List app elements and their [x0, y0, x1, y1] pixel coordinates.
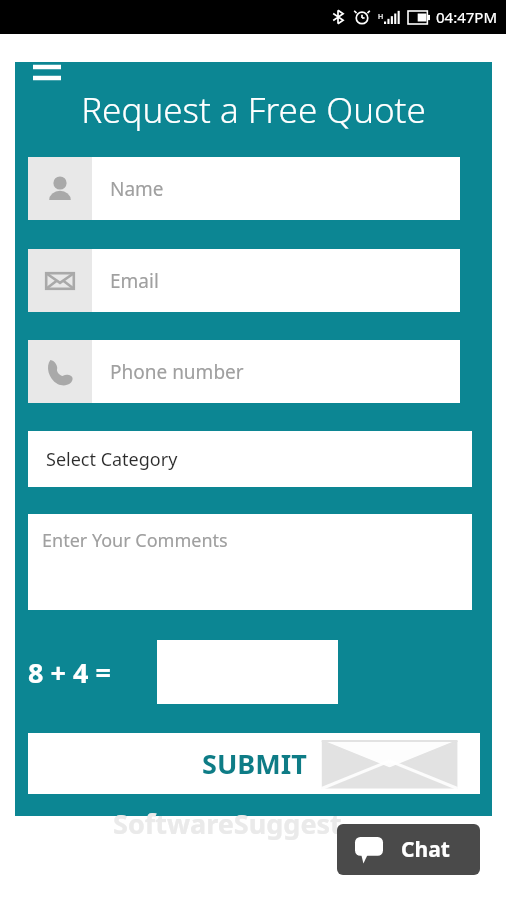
staticText: H: [378, 12, 384, 22]
button[interactable]: Phone number: [28, 340, 460, 403]
button[interactable]: Email: [28, 249, 460, 312]
button[interactable]: Enter Your Comments: [28, 514, 472, 610]
staticText: SoftwareSuggest: [113, 805, 342, 842]
button[interactable]: Select Category: [28, 431, 472, 487]
staticText: Select Category: [46, 447, 178, 472]
staticText: Request a Free Quote: [15, 86, 492, 134]
staticText: 04:47PM: [436, 7, 498, 27]
staticText: Email: [110, 268, 159, 294]
staticText: Phone number: [110, 359, 244, 385]
button[interactable]: SUBMIT: [28, 733, 480, 794]
button[interactable]: Menu: [26, 56, 68, 88]
staticText: SUBMIT: [202, 745, 307, 782]
staticText: 8 + 4 =: [28, 654, 111, 691]
button[interactable]: Name: [28, 157, 460, 220]
staticText: Name: [110, 176, 164, 202]
staticText: Enter Your Comments: [42, 528, 228, 553]
staticText: Chat: [401, 835, 450, 864]
button[interactable]: Chat: [337, 824, 480, 875]
staticText: .com: [342, 818, 378, 838]
